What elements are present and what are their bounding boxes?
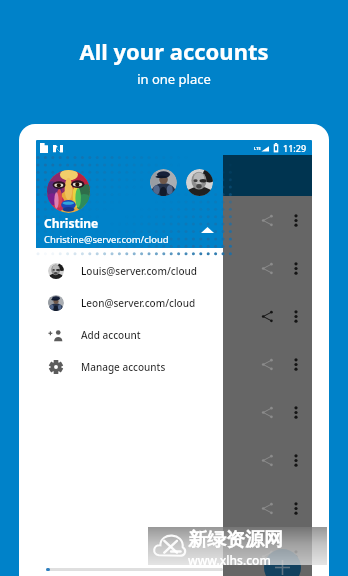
button[interactable]: Share — [261, 406, 274, 419]
button[interactable]: Manage accounts — [36, 351, 223, 383]
button[interactable]: Share — [261, 502, 274, 515]
staticText: Christine@server.com/cloud — [44, 233, 169, 246]
button[interactable]: Share — [261, 358, 274, 371]
button[interactable]: Christine — [36, 155, 223, 248]
button[interactable]: Share — [36, 532, 312, 576]
staticText: Christine — [44, 215, 99, 231]
staticText: www.xlhs.com — [188, 552, 271, 566]
staticText: Manage accounts — [81, 360, 166, 374]
staticText: LTE — [254, 146, 261, 151]
staticText: Add account — [81, 328, 141, 342]
staticText: 11:29 — [283, 142, 307, 154]
button[interactable]: More options — [294, 214, 298, 227]
button[interactable]: More options — [294, 502, 298, 515]
button[interactable]: Leon@server.com/cloud — [36, 287, 223, 319]
button[interactable]: Share — [36, 484, 312, 532]
button[interactable]: Share — [261, 454, 274, 467]
staticText: All your accounts — [79, 36, 269, 66]
button[interactable]: More options — [294, 310, 298, 323]
staticText: Louis@server.com/cloud — [81, 264, 197, 278]
button[interactable]: Share — [261, 214, 274, 227]
button[interactable]: Add account — [36, 319, 223, 351]
button[interactable]: More options — [294, 550, 298, 563]
staticText: 新绿资源网 — [188, 528, 283, 552]
button[interactable]: Louis@server.com/cloud — [36, 255, 223, 287]
button[interactable]: More options — [294, 262, 298, 275]
button[interactable]: More options — [294, 406, 298, 419]
button[interactable]: Share — [36, 340, 312, 388]
staticText: Leon@server.com/cloud — [81, 296, 196, 310]
button[interactable]: Add — [264, 549, 301, 576]
button[interactable]: Share — [36, 244, 312, 292]
button[interactable]: Share — [261, 310, 274, 323]
button[interactable]: Share — [261, 262, 274, 275]
button[interactable]: Share — [36, 196, 312, 244]
button[interactable]: More options — [294, 358, 298, 371]
button[interactable]: More options — [294, 454, 298, 467]
staticText: in one place — [137, 70, 211, 88]
button[interactable]: Share — [261, 550, 274, 563]
button[interactable]: Share — [36, 292, 312, 340]
button[interactable]: Share — [36, 388, 312, 436]
button[interactable]: Share — [36, 436, 312, 484]
